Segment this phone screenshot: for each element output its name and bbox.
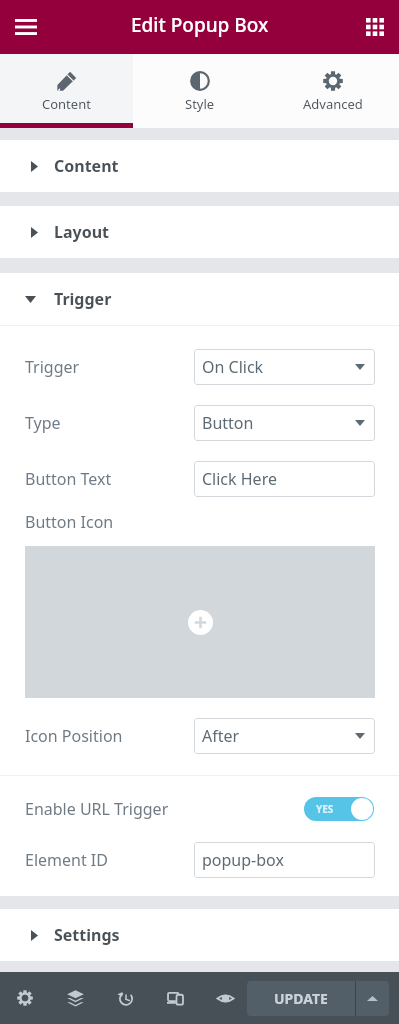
staticText: Enable URL Trigger bbox=[25, 798, 169, 820]
button[interactable]: Content bbox=[0, 140, 399, 192]
button[interactable]: UPDATE bbox=[247, 981, 355, 1016]
button[interactable]: popup-box bbox=[194, 842, 375, 878]
staticText: YES bbox=[316, 802, 334, 816]
button[interactable]: Settings bbox=[0, 909, 399, 961]
button[interactable]: Add button icon bbox=[25, 546, 375, 698]
staticText: Trigger bbox=[54, 288, 112, 310]
button[interactable]: Settings bbox=[0, 972, 50, 1024]
staticText: Type bbox=[25, 412, 61, 434]
button[interactable]: Preview changes bbox=[200, 972, 250, 1024]
staticText: Settings bbox=[54, 924, 120, 946]
button[interactable]: Content bbox=[0, 54, 133, 128]
button[interactable]: Navigator bbox=[50, 972, 100, 1024]
button[interactable]: More save options bbox=[356, 981, 389, 1016]
staticText: Style bbox=[185, 95, 215, 113]
button[interactable]: Layout bbox=[0, 206, 399, 258]
button[interactable]: History bbox=[100, 972, 150, 1024]
staticText: Trigger bbox=[25, 356, 80, 378]
staticText: UPDATE bbox=[274, 989, 328, 1008]
button[interactable]: Style bbox=[133, 54, 266, 128]
button[interactable]: Responsive mode bbox=[150, 972, 200, 1024]
staticText: Button Text bbox=[25, 468, 112, 490]
staticText: Advanced bbox=[303, 95, 363, 113]
staticText: Edit Popup Box bbox=[131, 12, 269, 38]
staticText: Content bbox=[54, 155, 119, 177]
button[interactable]: Widgets bbox=[355, 7, 395, 47]
staticText: Button bbox=[202, 412, 254, 434]
staticText: Layout bbox=[54, 221, 110, 243]
staticText: Element ID bbox=[25, 849, 108, 871]
button[interactable]: Menu bbox=[4, 5, 48, 49]
staticText: Button Icon bbox=[25, 511, 114, 533]
staticText: On Click bbox=[202, 356, 264, 378]
staticText: After bbox=[202, 725, 240, 747]
staticText: popup-box bbox=[202, 849, 284, 871]
staticText: Content bbox=[42, 95, 91, 113]
button[interactable]: Trigger bbox=[0, 273, 399, 325]
button[interactable]: Click Here bbox=[194, 461, 375, 497]
button[interactable]: On Click bbox=[194, 349, 375, 385]
button[interactable]: Advanced bbox=[266, 54, 399, 128]
button[interactable]: YES bbox=[304, 797, 374, 821]
button[interactable]: Button bbox=[194, 405, 375, 441]
staticText: Click Here bbox=[202, 468, 277, 490]
staticText: Icon Position bbox=[25, 725, 123, 747]
button[interactable]: After bbox=[194, 718, 375, 754]
